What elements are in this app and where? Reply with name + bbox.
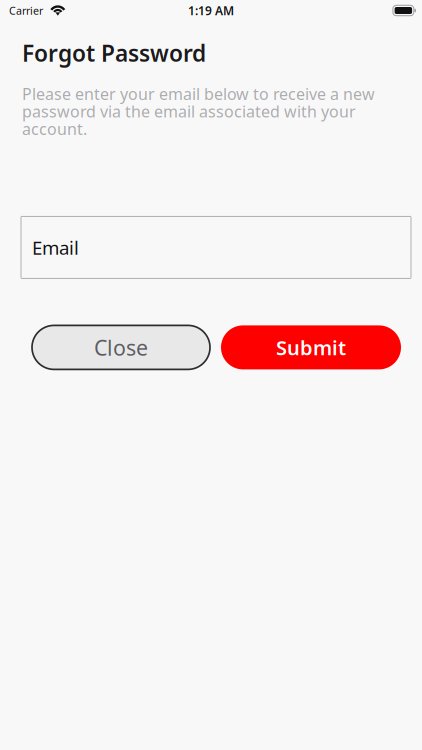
staticText: Email xyxy=(32,235,79,260)
staticText: Close xyxy=(94,333,148,361)
button[interactable]: Submit xyxy=(221,325,401,369)
staticText: 1:19 AM xyxy=(188,2,234,18)
staticText: Submit xyxy=(276,334,346,361)
staticText: Please enter your email below to receive… xyxy=(22,85,375,137)
button[interactable]: Close xyxy=(32,325,210,369)
staticText: Forgot Password xyxy=(22,38,206,68)
staticText: Carrier xyxy=(9,3,43,18)
